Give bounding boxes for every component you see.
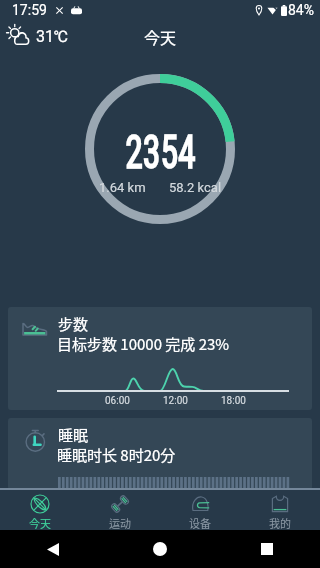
staticText: 06:00 <box>105 395 130 407</box>
staticText: 31℃ <box>36 27 69 46</box>
staticText: 睡眠时长 8时20分 <box>57 444 176 466</box>
button[interactable]: Recents <box>249 531 285 567</box>
staticText: 我的 <box>269 515 291 530</box>
staticText: 12:00 <box>163 395 188 407</box>
button[interactable]: 步数 <box>8 307 312 410</box>
button[interactable]: 运动 <box>80 488 160 530</box>
button[interactable]: Home <box>142 531 178 567</box>
other: Weather <box>5 23 31 49</box>
staticText: 目标步数 10000 完成 23% <box>57 333 230 355</box>
staticText: 睡眠 <box>58 424 89 446</box>
staticText: 84% <box>288 2 314 18</box>
button[interactable]: 设备 <box>160 488 240 530</box>
staticText: 58.2 kcal <box>169 180 222 195</box>
staticText: 设备 <box>189 515 211 530</box>
staticText: 运动 <box>109 515 131 530</box>
staticText: 17:59 <box>12 2 47 18</box>
button[interactable]: Weather <box>5 23 69 49</box>
staticText: 今天 <box>29 515 51 530</box>
button[interactable]: 今天 <box>0 488 80 530</box>
button[interactable]: Back <box>35 531 71 567</box>
staticText: 今天 <box>144 25 177 48</box>
staticText: 2354 <box>125 124 196 179</box>
button[interactable]: 我的 <box>240 488 320 530</box>
staticText: 1.64 km <box>99 180 146 195</box>
staticText: 18:00 <box>221 395 246 407</box>
staticText: 步数 <box>58 313 89 335</box>
button[interactable]: 睡眠 <box>8 418 312 490</box>
